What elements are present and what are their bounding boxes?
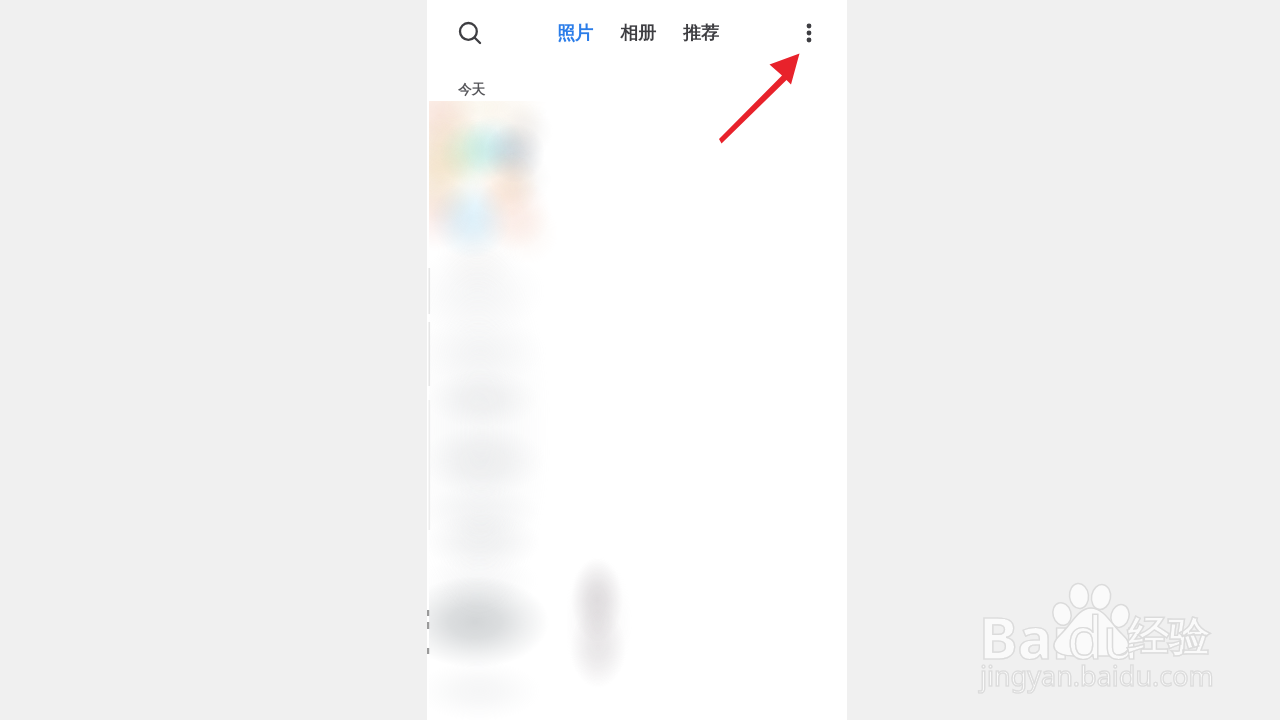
staticText: 经验: [1127, 612, 1209, 664]
staticText: 今天: [458, 81, 485, 98]
staticText: jingyan.baidu.com: [980, 657, 1214, 694]
staticText: Bai: [979, 597, 1070, 676]
button[interactable]: Photo: [429, 101, 557, 229]
staticText: jingyan.baidu.com: [980, 657, 1214, 694]
button[interactable]: Photo: [557, 485, 685, 613]
button[interactable]: 照片: [557, 14, 593, 52]
button[interactable]: Search: [451, 14, 489, 52]
staticText: Bai: [979, 597, 1070, 676]
button[interactable]: 相册: [620, 14, 656, 52]
staticText: 照片: [557, 22, 593, 45]
staticText: 推荐: [683, 22, 719, 45]
button[interactable]: Photo: [429, 485, 557, 613]
button[interactable]: Photo: [429, 613, 557, 720]
button[interactable]: More options: [790, 14, 828, 52]
button[interactable]: Photo: [429, 357, 557, 485]
button[interactable]: Photo: [429, 229, 557, 357]
button[interactable]: Photo: [685, 101, 813, 229]
staticText: 经验: [1127, 612, 1209, 664]
staticText: du: [1067, 597, 1139, 676]
staticText: 相册: [620, 22, 656, 45]
button[interactable]: Photo: [557, 613, 685, 720]
staticText: du: [1067, 597, 1139, 676]
button[interactable]: 推荐: [683, 14, 719, 52]
